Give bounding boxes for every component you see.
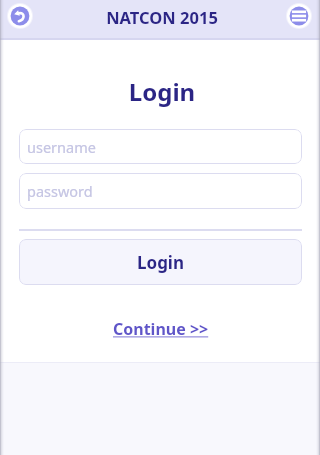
button[interactable]: password (19, 173, 302, 209)
staticText: Login (2, 75, 320, 108)
button[interactable]: Continue >> (101, 308, 221, 350)
staticText: Login (137, 251, 185, 274)
staticText: username (27, 137, 96, 157)
staticText: NATCON 2015 (2, 6, 320, 28)
button[interactable]: Back (7, 3, 33, 29)
staticText: password (27, 181, 93, 201)
button[interactable]: username (19, 129, 302, 164)
button[interactable]: Menu (286, 3, 312, 29)
staticText: Continue >> (113, 318, 209, 340)
button[interactable]: Login (19, 239, 302, 285)
